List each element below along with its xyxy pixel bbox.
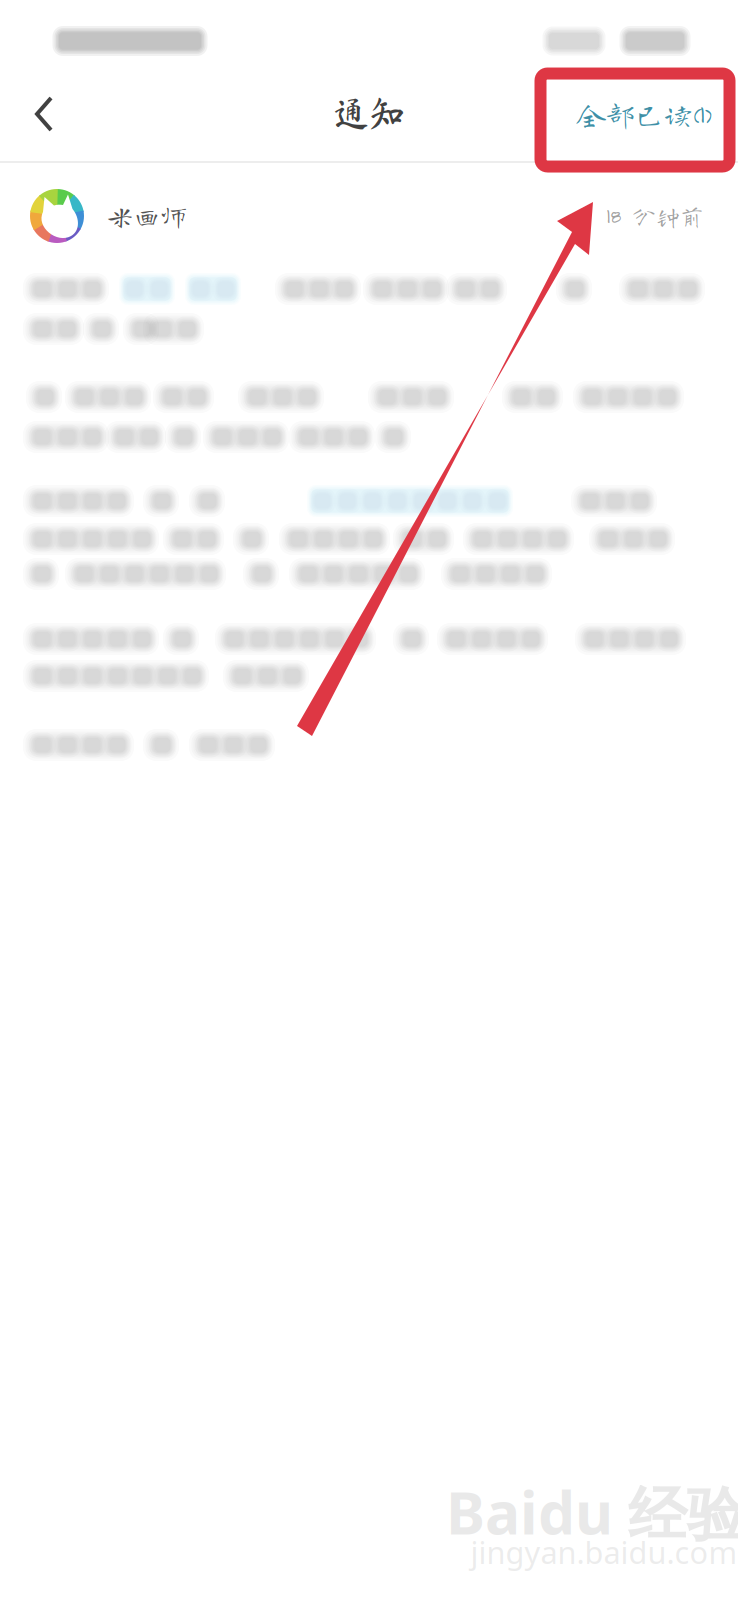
staticText: 18 分钟前 <box>606 204 704 228</box>
button[interactable]: 返回 <box>2 66 86 162</box>
staticText: Baidu 经验 <box>446 1473 738 1551</box>
staticText: jingyan.baidu.com <box>470 1532 737 1572</box>
staticText: 米画师 <box>106 203 187 229</box>
staticText: 全部已读(1) <box>576 99 711 129</box>
button[interactable]: 全部已读(1) <box>554 68 734 160</box>
staticText: 通知 <box>333 95 405 131</box>
